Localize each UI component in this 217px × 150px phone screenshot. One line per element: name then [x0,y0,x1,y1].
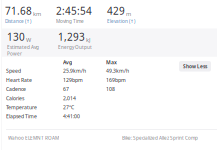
button[interactable]: 429 [107,4,158,24]
staticText: 169bpm [106,76,126,83]
staticText: Temperature [6,104,37,111]
button[interactable]: 130 [7,30,58,57]
staticText: 129bpm [63,76,83,83]
button[interactable]: 2:45:54 [56,4,107,24]
staticText: 108 [106,86,115,92]
staticText: Max [106,59,117,66]
staticText: Cadence [6,86,26,92]
staticText: Elapsed Time [6,113,37,120]
button[interactable]: Wahoo ELEMNT ROAM [8,135,59,141]
staticText: Estimated Avg Power [7,44,39,57]
staticText: 429 [107,4,125,18]
staticText: 49.3km/h [106,67,129,74]
staticText: 2,014 [63,95,76,102]
staticText: Calories [6,95,24,102]
staticText: 130 [7,30,25,44]
button[interactable]: Show Less [179,61,211,71]
staticText: 67 [63,86,69,92]
staticText: Energy Output [58,44,92,50]
staticText: 2:45:54 [56,4,92,18]
staticText: km [33,10,41,18]
staticText: 71.68 [5,4,32,18]
staticText: kJ [86,36,91,44]
staticText: Wahoo ELEMNT ROAM [8,135,59,141]
button[interactable]: Bike: Specialized Allez Sprint Comp [122,135,198,141]
staticText: 27°C [63,104,74,111]
staticText: Elevation (↑) [107,18,135,24]
staticText: m [126,10,131,18]
staticText: Heart Rate [6,76,32,83]
staticText: Moving Time [56,18,84,24]
staticText: Speed [6,67,21,74]
staticText: Bike: Specialized Allez Sprint Comp [122,135,198,141]
staticText: Avg [63,59,72,66]
button[interactable]: 71.68 [5,4,56,24]
staticText: Show Less [183,63,207,69]
button[interactable]: 1,293 [58,30,109,50]
staticText: Distance (↑) [5,18,31,24]
staticText: 1,293 [58,30,85,44]
staticText: 4:41:00 [63,113,80,120]
staticText: W [26,36,31,44]
staticText: 25.9km/h [63,67,86,74]
